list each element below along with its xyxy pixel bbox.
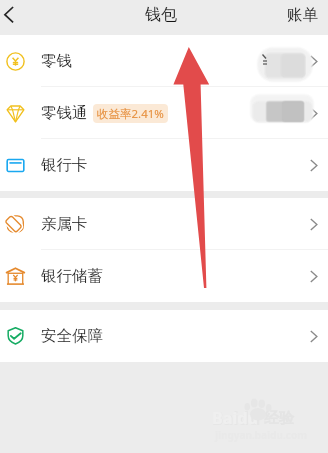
staticText: 亲属卡 [41, 214, 88, 234]
staticText: 银行卡 [41, 155, 88, 175]
button[interactable]: 零钱 [0, 35, 328, 87]
staticText: 钱包 [145, 5, 177, 25]
staticText: 银行储蓄 [41, 266, 103, 286]
staticText: 零钱通 [41, 103, 88, 123]
button[interactable]: 零钱通 [0, 87, 328, 139]
button[interactable]: Back [0, 0, 26, 29]
button[interactable]: 银行卡 [0, 139, 328, 191]
button[interactable]: 安全保障 [0, 310, 328, 362]
staticText: 经验 [264, 409, 294, 428]
staticText: 安全保障 [41, 326, 103, 346]
button[interactable]: 账单 [275, 0, 328, 29]
button[interactable]: 钱包 [145, 5, 177, 25]
staticText: 账单 [287, 5, 318, 25]
button[interactable]: 亲属卡 [0, 198, 328, 250]
staticText: 零钱 [41, 51, 72, 71]
staticText: 收益率2.41% [97, 106, 164, 122]
button[interactable]: 银行储蓄 [0, 250, 328, 302]
